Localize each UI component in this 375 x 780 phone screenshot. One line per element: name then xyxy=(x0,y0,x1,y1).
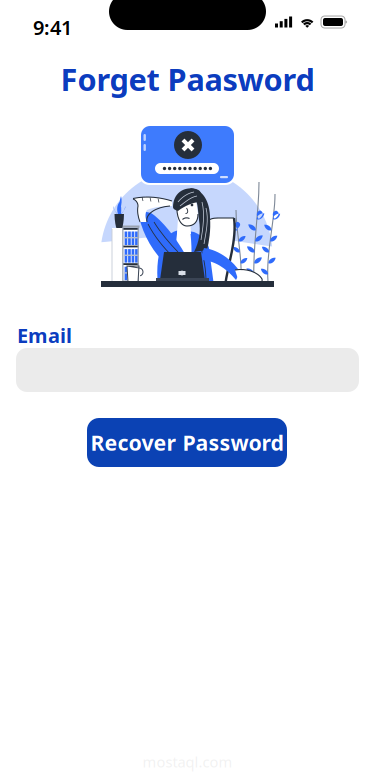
button[interactable]: Recover Password xyxy=(87,418,287,467)
staticText: 9:41 xyxy=(33,14,72,41)
staticText: Forget Paasword xyxy=(60,59,314,99)
staticText: Email xyxy=(17,322,72,349)
staticText: Recover Password xyxy=(90,428,283,457)
staticText: mostaql.com xyxy=(142,752,232,771)
